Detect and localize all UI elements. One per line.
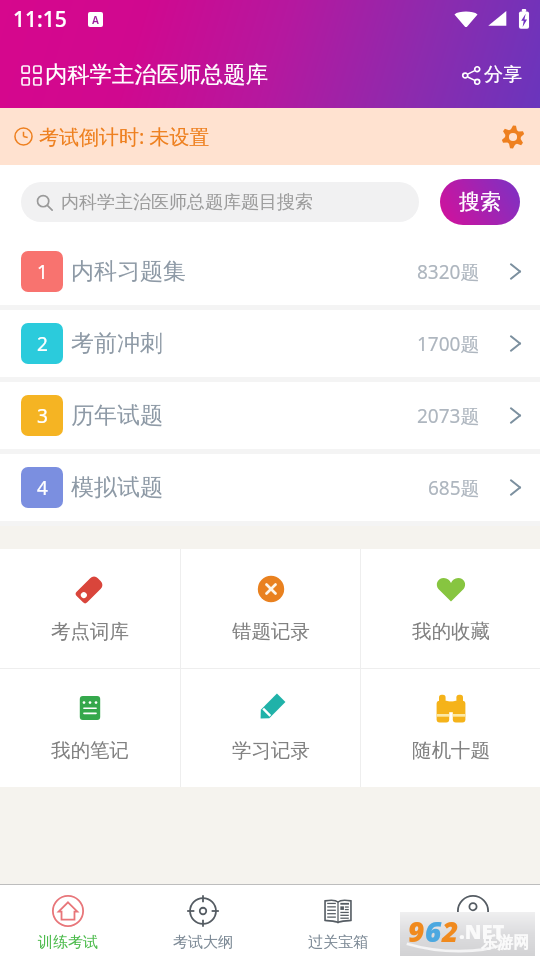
staticText: 考前冲刺 <box>71 329 163 358</box>
staticText: 历年试题 <box>71 401 163 430</box>
button[interactable]: 1 <box>0 238 540 305</box>
staticText: 搜索 <box>459 189 501 215</box>
staticText: A <box>92 13 99 27</box>
button[interactable]: 学习记录 <box>181 669 360 787</box>
staticText: 我的 <box>458 933 488 952</box>
staticText: 1 <box>37 259 48 285</box>
staticText: 考试大纲 <box>173 933 233 952</box>
staticText: 训练考试 <box>38 933 98 952</box>
button[interactable]: 内科学主治医师总题库题目搜索 <box>21 182 419 222</box>
button[interactable]: 错题记录 <box>181 549 360 668</box>
staticText: .NET <box>459 918 505 945</box>
button[interactable]: 过关宝箱 <box>270 885 405 960</box>
button[interactable]: 随机十题 <box>361 669 540 787</box>
staticText: 6 <box>425 912 442 950</box>
staticText: 2073题 <box>417 403 480 429</box>
staticText: 3 <box>37 403 48 429</box>
button[interactable]: 考点词库 <box>0 549 180 668</box>
button[interactable]: 4 <box>0 454 540 521</box>
staticText: 分享 <box>484 63 522 87</box>
staticText: 过关宝箱 <box>308 933 368 952</box>
staticText: 8320题 <box>417 259 480 285</box>
button[interactable]: 我的笔记 <box>0 669 180 787</box>
staticText: 内科学主治医师总题库 <box>45 61 268 89</box>
button[interactable]: 3 <box>0 382 540 449</box>
staticText: 内科习题集 <box>71 257 186 286</box>
staticText: 2 <box>442 912 459 950</box>
staticText: 随机十题 <box>412 738 490 763</box>
button[interactable]: 训练考试 <box>0 885 135 960</box>
staticText: 考试倒计时: 未设置 <box>39 123 210 150</box>
button[interactable]: 我的 <box>405 885 540 960</box>
staticText: 2 <box>37 331 48 357</box>
button[interactable]: Settings <box>498 122 528 152</box>
staticText: 学习记录 <box>232 738 310 763</box>
staticText: 685题 <box>428 475 480 501</box>
staticText: 11:15 <box>13 5 67 34</box>
staticText: 考点词库 <box>51 619 129 644</box>
button[interactable]: 搜索 <box>440 179 520 225</box>
staticText: 错题记录 <box>232 619 310 644</box>
staticText: 9 <box>408 912 425 950</box>
staticText: 模拟试题 <box>71 473 163 502</box>
button[interactable]: 2 <box>0 310 540 377</box>
staticText: 我的收藏 <box>412 619 490 644</box>
button[interactable]: 分享 <box>458 59 526 91</box>
staticText: 我的笔记 <box>51 738 129 763</box>
button[interactable]: 考试大纲 <box>135 885 270 960</box>
staticText: 1700题 <box>417 331 480 357</box>
staticText: 乐游网 <box>481 933 529 953</box>
staticText: 4 <box>37 475 48 501</box>
staticText: 内科学主治医师总题库题目搜索 <box>61 191 313 214</box>
button[interactable]: 我的收藏 <box>361 549 540 668</box>
